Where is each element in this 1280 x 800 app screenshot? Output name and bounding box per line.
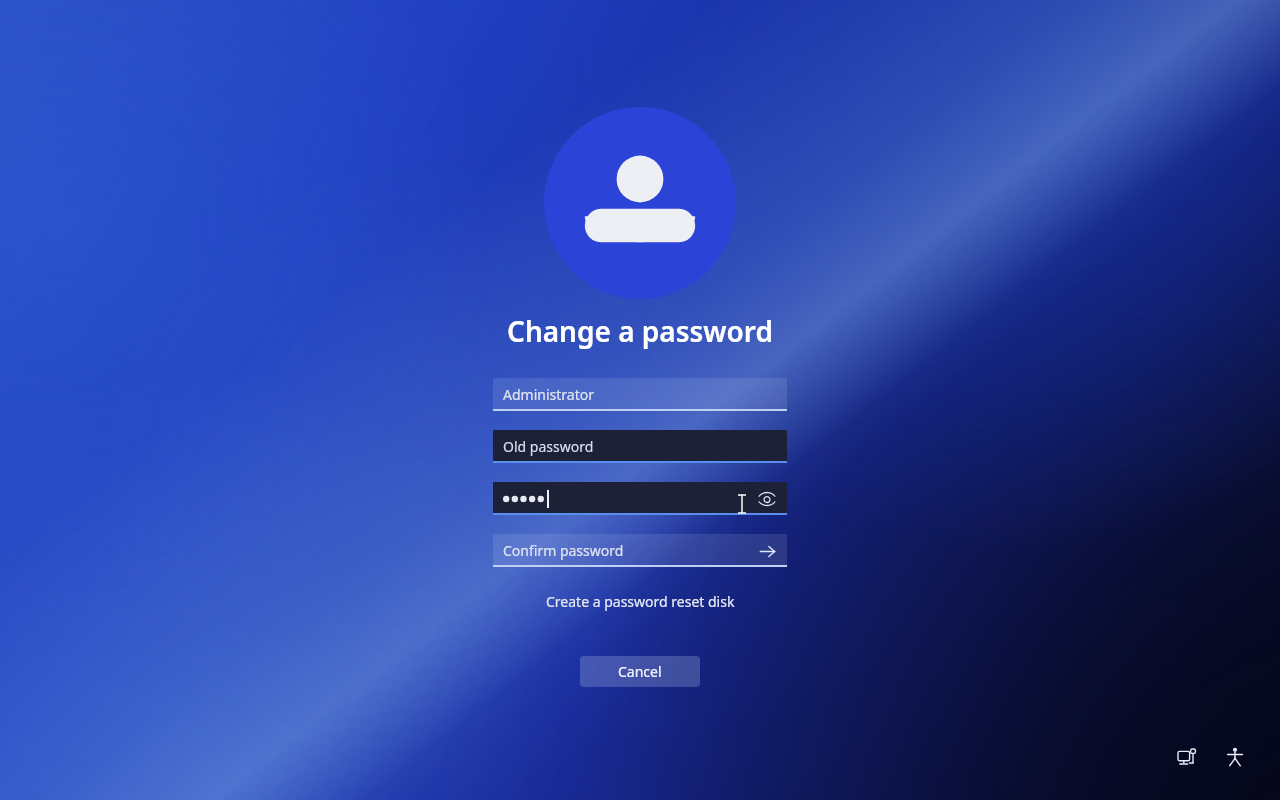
staticText: Administrator [503,385,594,404]
button[interactable]: Show password [493,482,787,515]
staticText: Cancel [618,662,662,681]
other: User avatar [544,107,736,299]
button[interactable]: Create a password reset disk [540,589,741,614]
button[interactable]: Network [1170,740,1204,774]
button[interactable]: Cancel [580,656,700,687]
button[interactable]: Administrator [493,378,787,411]
staticText: Old password [503,437,594,456]
button[interactable]: Accessibility [1218,740,1252,774]
button[interactable]: Confirm password [493,534,787,567]
button[interactable]: Old password [493,430,787,463]
staticText: Confirm password [503,541,624,560]
button[interactable]: Show password [755,487,779,511]
button[interactable]: Submit [755,539,779,563]
staticText: Change a password [507,312,773,350]
staticText: Create a password reset disk [546,592,735,611]
